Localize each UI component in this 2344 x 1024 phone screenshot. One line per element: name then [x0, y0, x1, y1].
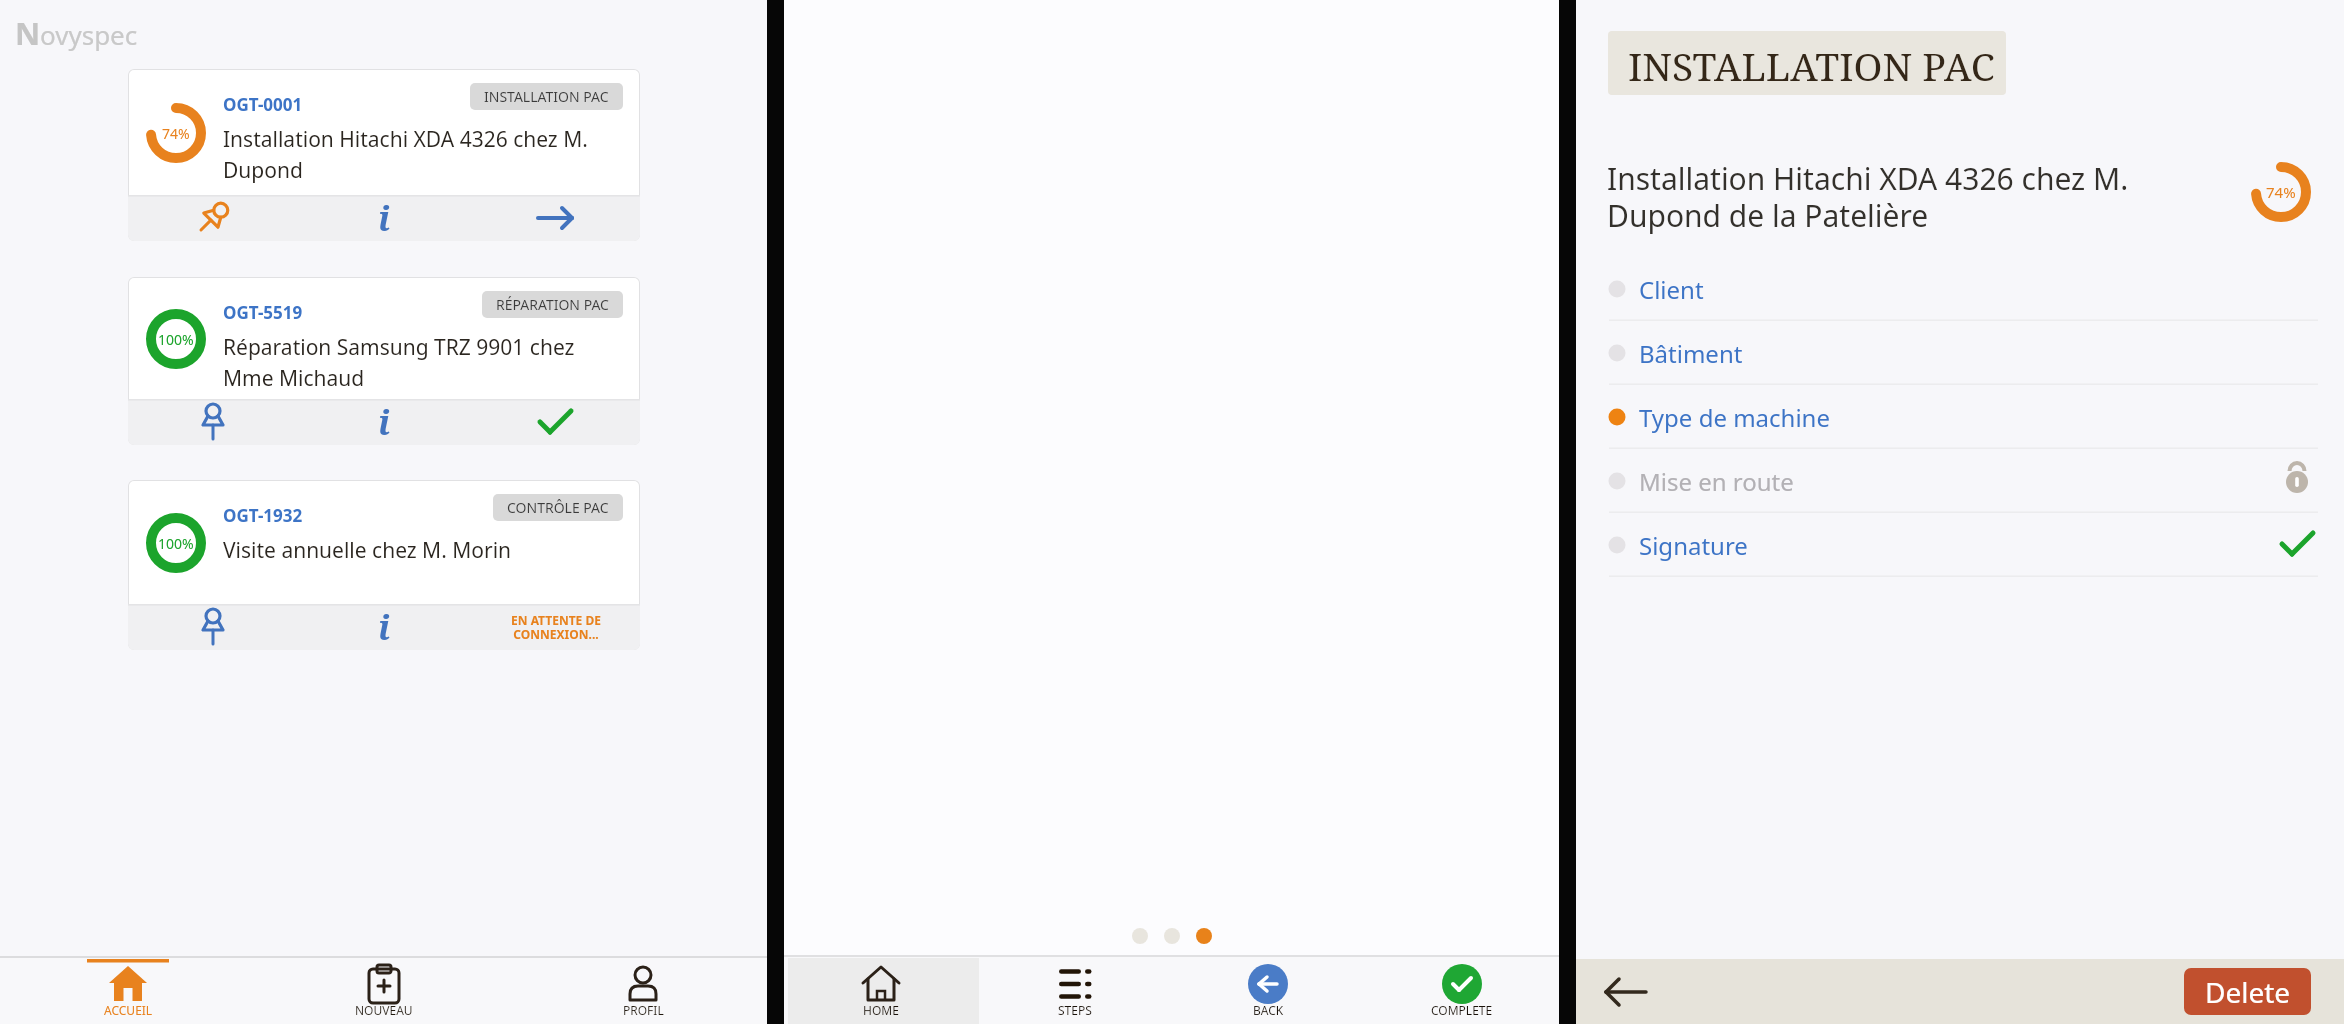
- staticText: Installation Hitachi XDA 4326 chez M. Du…: [223, 125, 588, 184]
- staticText: i: [378, 399, 391, 445]
- button[interactable]: HOME: [811, 957, 951, 1024]
- button[interactable]: 74%: [128, 69, 640, 241]
- staticText: Mise en route: [1639, 465, 1794, 498]
- staticText: BACK: [1253, 1002, 1284, 1018]
- button[interactable]: ACCUEIL: [68, 962, 188, 1022]
- staticText: 74%: [2266, 182, 2296, 202]
- button[interactable]: i: [359, 195, 409, 241]
- staticText: Installation Hitachi XDA 4326 chez M. Du…: [1607, 158, 2129, 236]
- button[interactable]: EN ATTENTE DE CONNEXION...: [468, 604, 640, 650]
- staticText: CONTRÔLE PAC: [507, 498, 609, 517]
- staticText: Réparation Samsung TRZ 9901 chez Mme Mic…: [223, 333, 575, 392]
- staticText: 100%: [158, 534, 194, 553]
- button[interactable]: [188, 195, 238, 241]
- staticText: OGT-5519: [223, 301, 303, 324]
- staticText: HOME: [863, 1002, 899, 1018]
- button[interactable]: COMPLETE: [1392, 957, 1532, 1024]
- staticText: OGT-1932: [223, 504, 303, 527]
- staticText: EN ATTENTE DE CONNEXION...: [511, 612, 601, 643]
- button[interactable]: PROFIL: [583, 962, 703, 1022]
- button[interactable]: 100%: [128, 480, 640, 650]
- staticText: i: [378, 195, 391, 241]
- button[interactable]: 100%: [128, 277, 640, 445]
- button[interactable]: Type de machine: [1576, 385, 2344, 449]
- staticText: NOUVEAU: [355, 1002, 413, 1018]
- staticText: OGT-0001: [223, 93, 303, 116]
- staticText: 100%: [158, 330, 194, 349]
- staticText: Client: [1639, 273, 1704, 306]
- staticText: INSTALLATION PAC: [1628, 39, 1995, 92]
- staticText: ovyspec: [40, 17, 138, 52]
- button[interactable]: Bâtiment: [1576, 321, 2344, 385]
- staticText: PROFIL: [623, 1002, 664, 1018]
- button[interactable]: Client: [1576, 257, 2344, 321]
- staticText: INSTALLATION PAC: [484, 87, 609, 106]
- staticText: Visite annuelle chez M. Morin: [223, 536, 512, 565]
- button[interactable]: Signature: [1576, 513, 2344, 577]
- staticText: Delete: [2205, 973, 2291, 1011]
- button[interactable]: STEPS: [1005, 957, 1145, 1024]
- button[interactable]: i: [359, 399, 409, 445]
- staticText: STEPS: [1058, 1002, 1092, 1018]
- staticText: 74%: [162, 124, 190, 143]
- staticText: Bâtiment: [1639, 337, 1743, 370]
- staticText: Signature: [1639, 529, 1748, 562]
- staticText: i: [378, 604, 391, 650]
- staticText: N: [15, 12, 41, 54]
- staticText: RÉPARATION PAC: [496, 295, 609, 314]
- button[interactable]: [188, 399, 238, 445]
- button[interactable]: Delete: [2184, 968, 2311, 1015]
- button[interactable]: [188, 604, 238, 650]
- button[interactable]: NOUVEAU: [324, 962, 444, 1022]
- button[interactable]: i: [359, 604, 409, 650]
- staticText: ACCUEIL: [104, 1002, 153, 1018]
- button[interactable]: BACK: [1198, 957, 1338, 1024]
- staticText: COMPLETE: [1431, 1002, 1493, 1018]
- button[interactable]: [530, 195, 580, 241]
- staticText: Type de machine: [1639, 401, 1830, 434]
- button[interactable]: Mise en route: [1576, 449, 2344, 513]
- button[interactable]: [1596, 967, 1656, 1017]
- button[interactable]: [530, 399, 580, 445]
